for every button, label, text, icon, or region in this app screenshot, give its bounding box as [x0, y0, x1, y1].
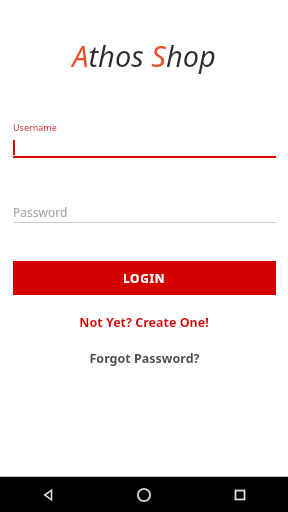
staticText: Not Yet? Create One!: [79, 314, 209, 331]
staticText: LOGIN: [123, 270, 166, 286]
staticText: Username: [13, 121, 57, 133]
staticText: Athos Shop: [72, 36, 216, 75]
button[interactable]: Password: [13, 202, 276, 222]
staticText: Password: [13, 204, 68, 220]
button[interactable]: Recents: [192, 477, 288, 512]
button[interactable]: LOGIN: [13, 261, 276, 295]
button[interactable]: Forgot Password?: [0, 350, 288, 367]
staticText: Forgot Password?: [89, 350, 200, 367]
button[interactable]: Not Yet? Create One!: [0, 314, 288, 331]
button[interactable]: [13, 138, 276, 156]
button[interactable]: Home: [96, 477, 192, 512]
button[interactable]: Back: [0, 477, 96, 512]
